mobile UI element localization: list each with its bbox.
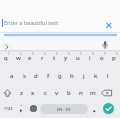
staticText: v — [55, 89, 59, 97]
staticText: a — [10, 72, 14, 80]
staticText: 2 — [20, 52, 22, 56]
button[interactable]: z — [15, 86, 27, 99]
staticText: 8 — [92, 52, 94, 56]
staticText: m — [90, 89, 96, 97]
staticText: 5 — [56, 52, 58, 56]
staticText: l — [107, 72, 109, 80]
staticText: q — [4, 54, 8, 62]
button[interactable] — [103, 20, 114, 31]
button[interactable]: s — [18, 69, 30, 82]
staticText: x — [31, 89, 35, 97]
staticText: n — [79, 89, 83, 97]
staticText: ?123 — [4, 106, 13, 111]
button[interactable] — [15, 102, 27, 115]
button[interactable]: m — [87, 86, 99, 99]
staticText: EN · DE — [57, 107, 71, 112]
button[interactable]: p — [108, 51, 120, 64]
staticText: 0 — [116, 52, 118, 56]
button[interactable] — [99, 87, 120, 100]
staticText: 6 — [68, 52, 70, 56]
button[interactable] — [103, 103, 114, 114]
staticText: y — [64, 54, 68, 62]
staticText: 4 — [44, 52, 46, 56]
button[interactable] — [100, 40, 110, 50]
button[interactable]: v — [51, 86, 63, 99]
staticText: p — [112, 54, 116, 62]
button[interactable]: y — [60, 51, 72, 64]
staticText: 9 — [104, 52, 106, 56]
button[interactable]: o — [96, 51, 108, 64]
button[interactable] — [27, 102, 40, 115]
button[interactable]: k — [90, 69, 102, 82]
staticText: d — [34, 72, 38, 80]
button[interactable]: b — [63, 86, 75, 99]
button[interactable]: d — [30, 69, 42, 82]
staticText: g — [58, 72, 62, 80]
staticText: i — [89, 54, 91, 62]
button[interactable]: r — [36, 51, 48, 64]
button[interactable]: j — [78, 69, 90, 82]
staticText: Enter a beautiful text — [4, 19, 59, 26]
staticText: k — [94, 72, 98, 80]
button[interactable]: q — [0, 51, 12, 64]
staticText: f — [47, 72, 50, 80]
button[interactable] — [0, 87, 15, 100]
button[interactable]: l — [102, 69, 114, 82]
staticText: h — [70, 72, 74, 80]
staticText: 1 — [8, 52, 10, 56]
button[interactable]: e — [24, 51, 36, 64]
button[interactable]: u — [72, 51, 84, 64]
button[interactable]: EN · DE — [40, 104, 88, 114]
button[interactable]: a — [6, 69, 18, 82]
button[interactable] — [3, 43, 11, 51]
button[interactable]: g — [54, 69, 66, 82]
staticText: w — [16, 54, 21, 62]
staticText: t — [53, 54, 56, 62]
button[interactable]: w — [12, 51, 24, 64]
staticText: c — [44, 89, 47, 97]
button[interactable]: h — [66, 69, 78, 82]
button[interactable]: t — [48, 51, 60, 64]
staticText: j — [83, 72, 85, 80]
button[interactable]: f — [42, 69, 54, 82]
button[interactable]: ?123 — [1, 102, 15, 115]
button[interactable] — [89, 102, 100, 115]
staticText: 7 — [80, 52, 82, 56]
staticText: s — [23, 72, 26, 80]
button[interactable]: x — [27, 86, 39, 99]
button[interactable]: c — [39, 86, 51, 99]
staticText: b — [67, 89, 71, 97]
staticText: e — [28, 54, 32, 62]
button[interactable]: i — [84, 51, 96, 64]
button[interactable]: n — [75, 86, 87, 99]
staticText: o — [100, 54, 104, 62]
staticText: z — [20, 89, 23, 97]
staticText: r — [41, 54, 44, 62]
staticText: u — [76, 54, 80, 62]
staticText: 3 — [32, 52, 34, 56]
